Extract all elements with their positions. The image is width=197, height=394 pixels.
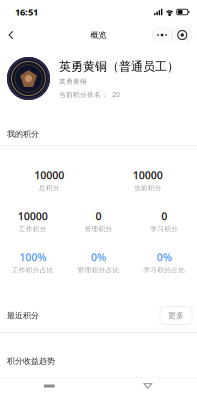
staticText: 0%	[157, 250, 172, 264]
staticText: 总积分	[39, 184, 60, 192]
staticText: 学习积分	[150, 225, 178, 233]
staticText: 工作积分占比	[12, 266, 54, 274]
staticText: 工作积分	[19, 225, 47, 233]
staticText: 概览	[90, 30, 106, 40]
staticText: 我的积分	[7, 129, 39, 139]
button[interactable]: 更多	[160, 306, 192, 324]
staticText: 积分收益趋势	[7, 356, 55, 366]
button[interactable]: More options	[152, 28, 192, 42]
staticText: 学习积分占比	[143, 266, 185, 274]
staticText: 当前积分	[134, 184, 162, 192]
staticText: 0	[161, 209, 167, 223]
staticText: 16:51	[15, 6, 38, 18]
staticText: 当前积分排名： 20	[59, 90, 120, 99]
staticText: 10000	[133, 168, 163, 182]
staticText: 100%	[19, 250, 46, 264]
staticText: 更多	[168, 311, 184, 320]
staticText: 管理积分占比	[77, 266, 119, 274]
staticText: 10000	[34, 168, 64, 182]
button[interactable]: Home	[0, 378, 98, 394]
staticText: 管理积分	[84, 225, 112, 233]
staticText: 10000	[18, 209, 48, 223]
staticText: 0	[95, 209, 101, 223]
button[interactable]: Back	[98, 378, 197, 394]
staticText: 英勇黄铜	[59, 77, 87, 86]
staticText: 0%	[91, 250, 106, 264]
button[interactable]: Back	[1, 25, 21, 45]
staticText: 英勇黄铜（普通员工）	[59, 59, 179, 74]
staticText: 最近积分	[7, 311, 39, 320]
